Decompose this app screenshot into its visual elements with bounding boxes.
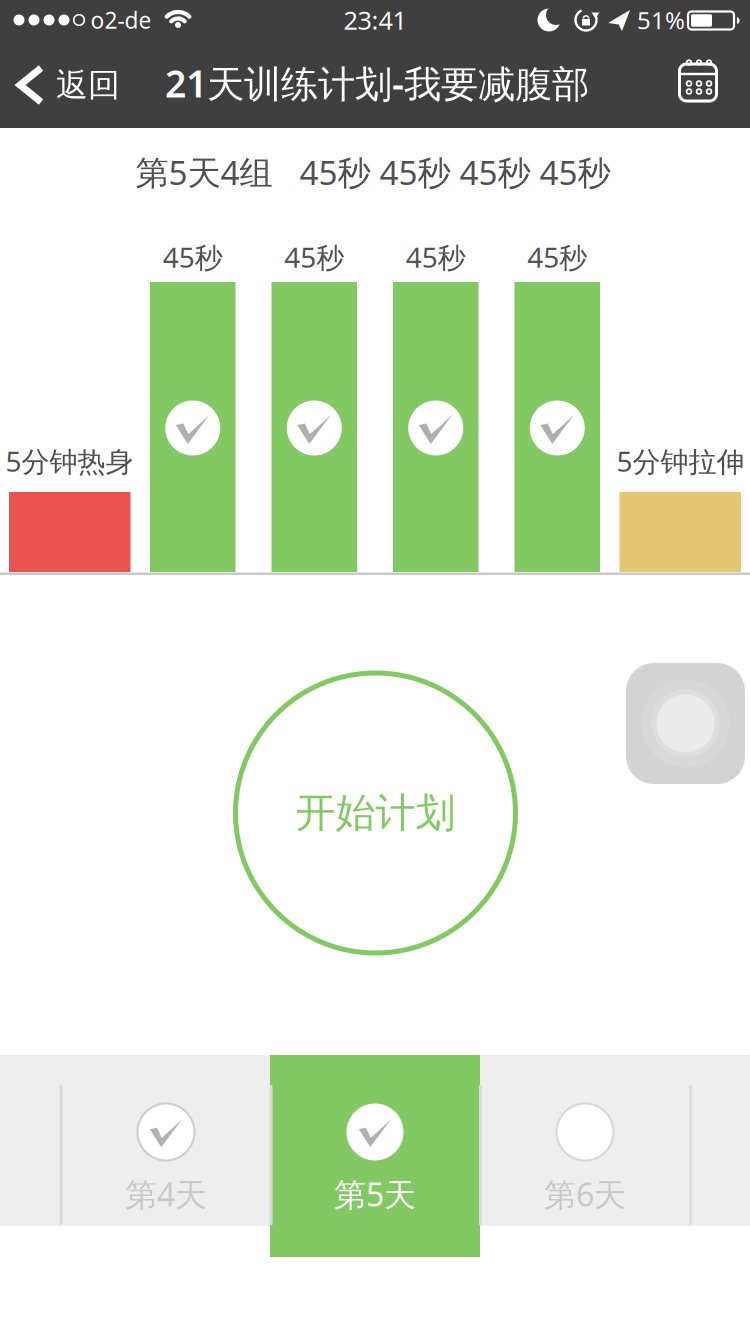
staticText: o2-de [90, 5, 151, 35]
button[interactable]: 开始计划 [232, 670, 518, 956]
button[interactable]: AssistiveTouch [626, 663, 745, 784]
button[interactable]: 第5天 [270, 1055, 480, 1257]
staticText: 第4天 [125, 1173, 207, 1215]
staticText: 第5天4组 45秒 45秒 45秒 45秒 [135, 150, 610, 194]
button[interactable]: 第4天 [61, 1055, 271, 1226]
staticText: 返回 [56, 65, 120, 105]
staticText: 第6天 [544, 1173, 626, 1215]
staticText: 开始计划 [295, 788, 455, 837]
staticText: 5分钟拉伸 [616, 442, 744, 480]
staticText: 21天训练计划-我要减腹部 [165, 58, 589, 108]
staticText: 第5天 [334, 1173, 416, 1215]
staticText: 51% [637, 4, 685, 36]
staticText: 45秒 [284, 238, 344, 276]
button[interactable]: Back [0, 40, 150, 128]
button[interactable]: Calendar [663, 47, 733, 117]
staticText: 45秒 [163, 238, 223, 276]
staticText: 45秒 [527, 238, 587, 276]
staticText: 45秒 [406, 238, 466, 276]
button[interactable]: 第6天 [480, 1055, 690, 1226]
staticText: 23:41 [343, 3, 406, 37]
staticText: 5分钟热身 [5, 442, 133, 480]
